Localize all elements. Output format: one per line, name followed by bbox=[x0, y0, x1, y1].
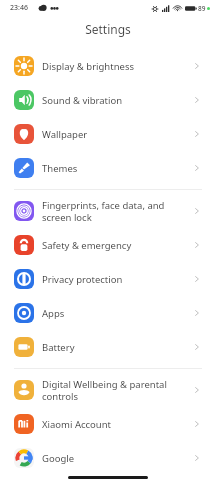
button[interactable]: Wallpaper bbox=[0, 117, 216, 151]
staticText: 23:46 bbox=[10, 3, 28, 13]
button[interactable]: Fingerprints, face data, and screen lock bbox=[0, 194, 216, 228]
staticText: Google bbox=[42, 452, 186, 465]
button[interactable]: Digital Wellbeing & parental controls bbox=[0, 373, 216, 407]
button[interactable]: Apps bbox=[0, 296, 216, 330]
staticText: Sound & vibration bbox=[42, 94, 186, 107]
button[interactable]: Safety & emergency bbox=[0, 228, 216, 262]
button[interactable]: Sound & vibration bbox=[0, 83, 216, 117]
staticText: Digital Wellbeing & parental controls bbox=[42, 378, 186, 402]
button[interactable]: Display & brightness bbox=[0, 49, 216, 83]
staticText: Display & brightness bbox=[42, 60, 186, 73]
button[interactable]: Themes bbox=[0, 151, 216, 185]
staticText: Safety & emergency bbox=[42, 239, 186, 252]
staticText: Battery bbox=[42, 341, 186, 354]
staticText: 89 bbox=[198, 4, 206, 13]
staticText: Wallpaper bbox=[42, 128, 186, 141]
staticText: Settings bbox=[85, 21, 131, 37]
staticText: Xiaomi Account bbox=[42, 418, 186, 431]
button[interactable]: Privacy protection bbox=[0, 262, 216, 296]
staticText: Apps bbox=[42, 307, 186, 320]
button[interactable]: Xiaomi Account bbox=[0, 407, 216, 441]
staticText: Privacy protection bbox=[42, 273, 186, 286]
button[interactable]: Battery bbox=[0, 330, 216, 364]
staticText: Themes bbox=[42, 162, 186, 175]
staticText: Fingerprints, face data, and screen lock bbox=[42, 199, 186, 223]
button[interactable]: Google bbox=[0, 441, 216, 475]
